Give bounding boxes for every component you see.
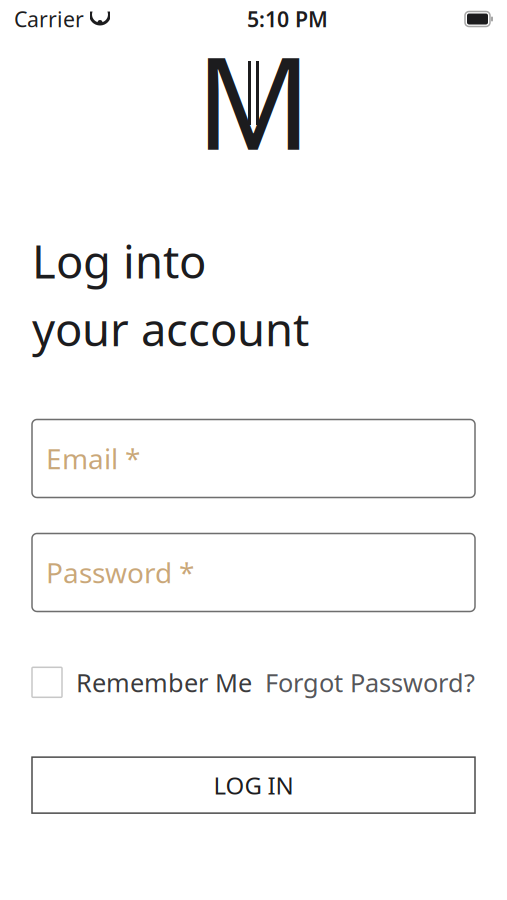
button[interactable]: Remember Me <box>32 665 252 699</box>
staticText: Password * <box>46 554 194 591</box>
staticText: M <box>195 13 311 187</box>
staticText: Remember Me <box>76 665 252 699</box>
button[interactable]: Forgot Password? <box>265 665 475 699</box>
staticText: 5:10 PM <box>247 5 328 33</box>
staticText: LOG IN <box>213 769 293 801</box>
staticText: your account <box>32 298 309 359</box>
button[interactable]: LOG IN <box>32 757 475 813</box>
staticText: Log into <box>32 230 206 292</box>
staticText: Email * <box>46 440 140 477</box>
staticText: Carrier <box>14 5 84 33</box>
staticText: Forgot Password? <box>265 665 475 699</box>
